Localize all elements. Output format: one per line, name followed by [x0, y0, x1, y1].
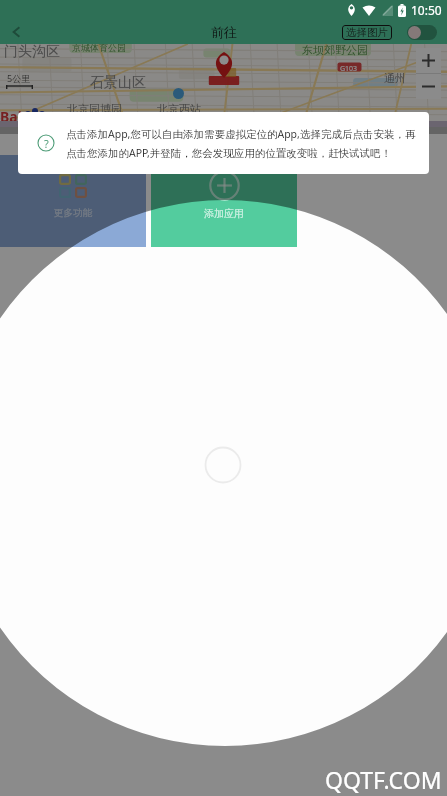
button[interactable]: Zoom out	[416, 74, 441, 99]
staticText: 北京园博园	[67, 102, 122, 116]
staticText: 添加应用	[204, 207, 244, 220]
staticText: 通州	[384, 71, 406, 85]
staticText: 东坝郊野公园	[302, 43, 368, 57]
staticText: 点击您添加的APP,并登陆，您会发现应用的位置改变啦，赶快试试吧！	[66, 146, 392, 160]
button[interactable]: Toggle	[407, 25, 437, 40]
staticText: QQTF.COM	[325, 764, 442, 795]
staticText: 门头沟区	[4, 43, 60, 61]
staticText: 前往	[211, 24, 237, 40]
staticText: 点击添加App,您可以自由添加需要虚拟定位的App,选择完成后点击安装，再	[66, 127, 416, 141]
staticText: 选择图片	[346, 26, 388, 39]
staticText: G103	[340, 64, 358, 74]
button[interactable]: 添加应用	[151, 155, 297, 247]
staticText: Bai	[0, 107, 22, 126]
button[interactable]: 更多功能	[0, 155, 146, 247]
staticText: 石景山区	[90, 74, 146, 92]
staticText: 北京西站	[157, 102, 201, 116]
staticText: 更多功能	[54, 207, 92, 219]
button[interactable]: 选择图片	[342, 25, 392, 40]
button[interactable]: Zoom in	[416, 48, 441, 73]
staticText: ?	[44, 136, 49, 151]
staticText: 京城体育公园	[72, 42, 126, 53]
staticText: 10:50	[411, 2, 442, 18]
staticText: 5公里	[7, 72, 31, 84]
button[interactable]: Back	[0, 20, 34, 44]
